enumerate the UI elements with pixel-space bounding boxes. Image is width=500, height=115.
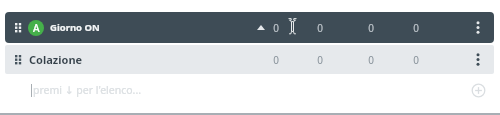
staticText: Giorno ON (50, 21, 100, 34)
staticText: 0 (317, 21, 323, 35)
button[interactable]: Colazione (5, 45, 494, 74)
staticText: 0 (317, 53, 323, 67)
button[interactable]: Add (470, 82, 487, 99)
staticText: 0 (273, 21, 279, 35)
button[interactable]: premi ↓ per l'elenco... (5, 76, 494, 104)
staticText: A (33, 21, 40, 35)
staticText: Colazione (29, 52, 83, 67)
staticText: 0 (273, 53, 279, 67)
staticText: 0 (368, 53, 374, 67)
staticText: 0 (413, 21, 419, 35)
staticText: 0 (413, 53, 419, 67)
button[interactable]: More options (472, 45, 484, 74)
staticText: premi ↓ per l'elenco... (33, 83, 142, 97)
button[interactable]: More options (472, 12, 484, 43)
staticText: 0 (368, 21, 374, 35)
button[interactable]: A (5, 12, 494, 43)
